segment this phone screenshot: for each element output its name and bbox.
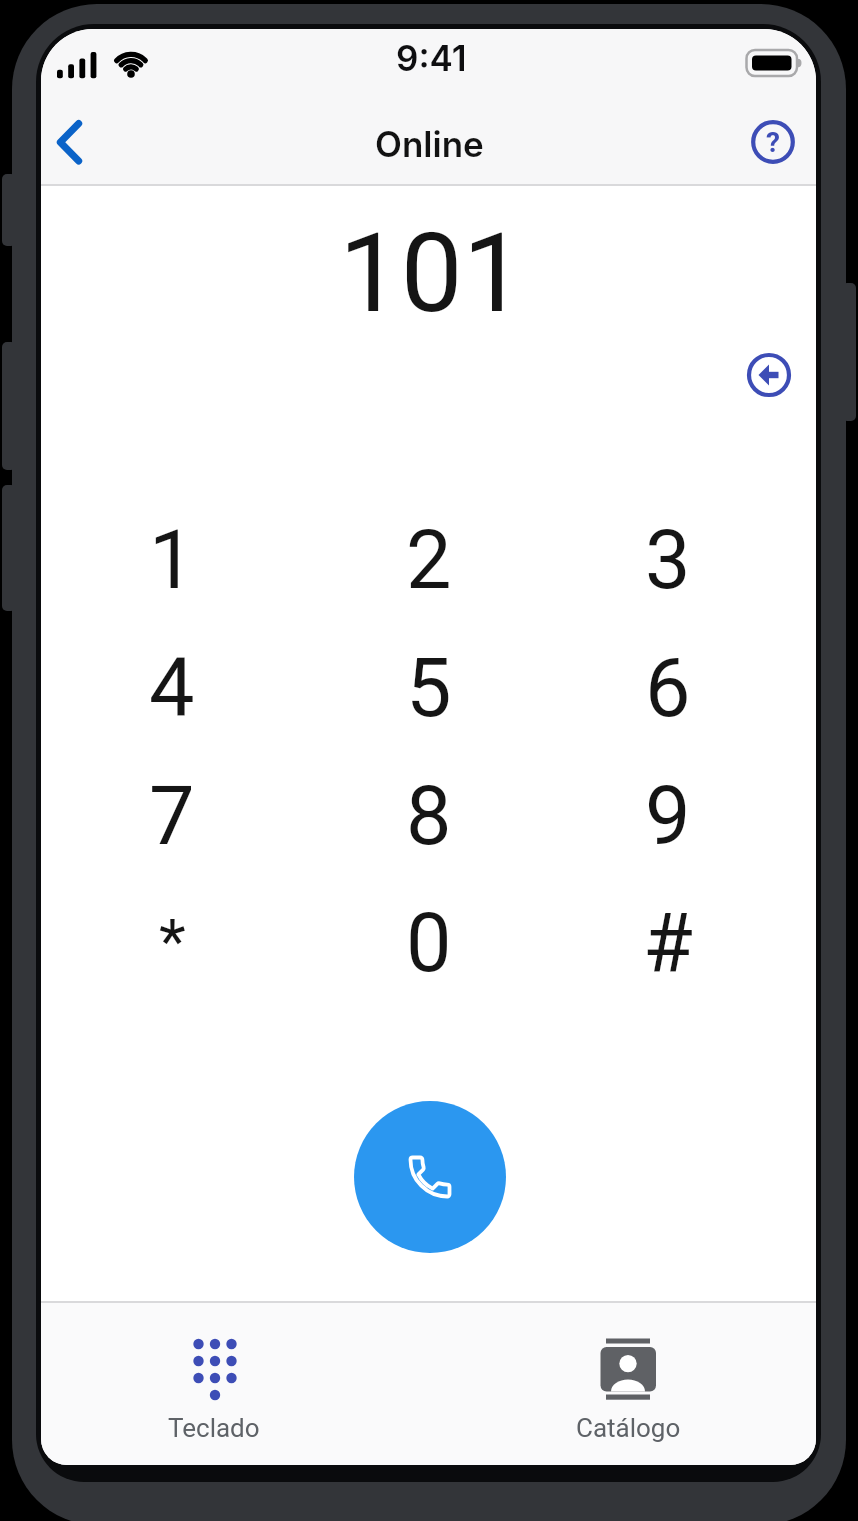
staticText: * bbox=[159, 905, 186, 978]
staticText: 4 bbox=[149, 641, 195, 736]
staticText: Catálogo bbox=[576, 1413, 681, 1443]
button[interactable]: 1 bbox=[97, 504, 247, 616]
button[interactable]: 9 bbox=[593, 760, 743, 872]
staticText: Online bbox=[375, 123, 484, 163]
staticText: 6 bbox=[645, 641, 691, 736]
button[interactable] bbox=[354, 1101, 506, 1253]
staticText: # bbox=[643, 896, 693, 991]
staticText: 3 bbox=[645, 513, 691, 608]
button[interactable]: # bbox=[593, 887, 743, 999]
staticText: 7 bbox=[149, 769, 195, 864]
staticText: 8 bbox=[406, 769, 452, 864]
staticText: 101 bbox=[339, 209, 525, 338]
staticText: 2 bbox=[406, 513, 452, 608]
button[interactable]: 6 bbox=[593, 632, 743, 744]
button[interactable]: 4 bbox=[97, 632, 247, 744]
button[interactable]: 3 bbox=[593, 504, 743, 616]
button[interactable]: 8 bbox=[354, 760, 504, 872]
button[interactable]: Catálogo bbox=[542, 1315, 714, 1445]
button[interactable] bbox=[741, 347, 797, 403]
button[interactable]: 7 bbox=[97, 760, 247, 872]
button[interactable] bbox=[45, 110, 101, 174]
staticText: 5 bbox=[406, 641, 452, 736]
staticText: Teclado bbox=[168, 1413, 260, 1443]
button[interactable]: 5 bbox=[354, 632, 504, 744]
button[interactable]: 2 bbox=[354, 504, 504, 616]
button[interactable]: ? bbox=[745, 114, 801, 170]
staticText: 9 bbox=[645, 769, 691, 864]
staticText: 1 bbox=[149, 513, 195, 608]
button[interactable]: * bbox=[97, 887, 247, 999]
staticText: 9:41 bbox=[396, 37, 467, 77]
staticText: 0 bbox=[406, 896, 452, 991]
button[interactable]: 0 bbox=[354, 887, 504, 999]
staticText: ? bbox=[766, 126, 780, 159]
button[interactable]: Teclado bbox=[128, 1315, 300, 1445]
